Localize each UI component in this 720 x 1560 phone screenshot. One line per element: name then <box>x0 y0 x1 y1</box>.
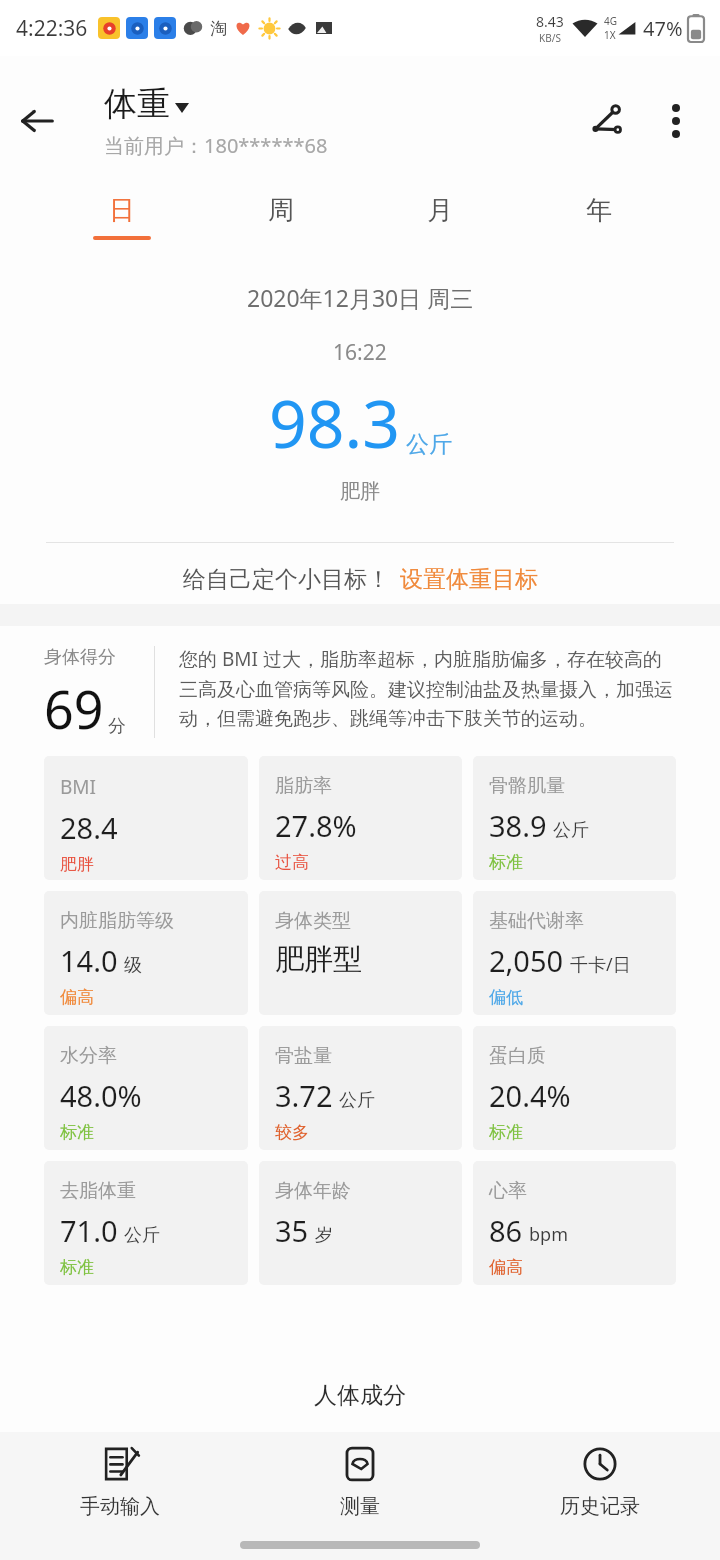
staticText: 手动输入 <box>80 1494 160 1519</box>
staticText: 48.0% <box>60 1076 142 1115</box>
button[interactable]: 测量 <box>240 1432 480 1530</box>
staticText: 身体年龄 <box>275 1179 351 1203</box>
staticText: 身体得分 <box>44 646 116 669</box>
button[interactable]: 手动输入 <box>0 1432 240 1530</box>
staticText: 年 <box>586 194 612 227</box>
staticText: 骨骼肌量 <box>489 774 565 798</box>
button[interactable]: 蛋白质 <box>473 1026 676 1150</box>
staticText: 8.43 <box>536 12 564 31</box>
button[interactable]: Back <box>0 84 74 158</box>
staticText: 69 <box>44 673 104 744</box>
button[interactable]: BMI <box>44 756 248 880</box>
staticText: 20.4% <box>489 1076 571 1115</box>
staticText: 周 <box>268 194 294 227</box>
staticText: 86 <box>489 1211 523 1250</box>
staticText: 测量 <box>340 1494 380 1519</box>
staticText: 偏低 <box>489 987 523 1008</box>
staticText: 38.9 <box>489 806 547 845</box>
staticText: 分 <box>108 715 126 738</box>
staticText: 98.3 <box>269 377 400 467</box>
staticText: 14.0 <box>60 941 118 980</box>
staticText: 体重 <box>104 83 170 125</box>
staticText: 给自己定个小目标！ <box>183 565 390 594</box>
staticText: 历史记录 <box>560 1494 640 1519</box>
button[interactable]: More options <box>644 89 708 153</box>
staticText: 2020年12月30日 周三 <box>247 282 474 313</box>
staticText: 标准 <box>60 1122 94 1143</box>
button[interactable]: 周 <box>201 186 360 248</box>
staticText: 35 <box>275 1211 309 1250</box>
button[interactable]: 骨盐量 <box>259 1026 462 1150</box>
button[interactable]: 心率 <box>473 1161 676 1285</box>
staticText: KB/S <box>539 31 561 45</box>
staticText: 级 <box>124 954 142 977</box>
button[interactable]: 去脂体重 <box>44 1161 248 1285</box>
staticText: 内脏脂肪等级 <box>60 909 174 933</box>
staticText: 月 <box>427 194 453 227</box>
staticText: 公斤 <box>553 819 589 842</box>
staticText: 岁 <box>315 1224 333 1247</box>
staticText: 1X <box>604 28 616 42</box>
button[interactable]: Share <box>570 84 644 158</box>
staticText: 公斤 <box>406 430 452 459</box>
button[interactable]: 骨骼肌量 <box>473 756 676 880</box>
staticText: 公斤 <box>124 1224 160 1247</box>
button[interactable]: 年 <box>519 186 678 248</box>
staticText: 心率 <box>489 1179 527 1203</box>
staticText: 4:22:36 <box>16 14 88 43</box>
staticText: 肥胖 <box>60 854 94 875</box>
staticText: 去脂体重 <box>60 1179 136 1203</box>
staticText: 设置体重目标 <box>400 565 538 594</box>
button[interactable]: 身体类型 <box>259 891 462 1015</box>
button[interactable]: 内脏脂肪等级 <box>44 891 248 1015</box>
staticText: 过高 <box>275 852 309 873</box>
staticText: 骨盐量 <box>275 1044 332 1068</box>
staticText: 4G <box>604 14 617 28</box>
staticText: 蛋白质 <box>489 1044 546 1068</box>
staticText: 脂肪率 <box>275 774 332 798</box>
staticText: bpm <box>529 1222 568 1247</box>
staticText: 2,050 <box>489 941 564 980</box>
staticText: 3.72 <box>275 1076 333 1115</box>
button[interactable]: 日 <box>42 186 201 248</box>
staticText: BMI <box>60 774 97 800</box>
button[interactable]: 水分率 <box>44 1026 248 1150</box>
staticText: 身体类型 <box>275 909 351 933</box>
staticText: 标准 <box>489 1122 523 1143</box>
staticText: 日 <box>109 194 135 227</box>
staticText: 71.0 <box>60 1211 118 1250</box>
staticText: 基础代谢率 <box>489 909 584 933</box>
staticText: 您的 BMI 过大，脂肪率超标，内脏脂肪偏多，存在较高的三高及心血管病等风险。建… <box>179 646 678 730</box>
staticText: 标准 <box>489 852 523 873</box>
button[interactable]: 脂肪率 <box>259 756 462 880</box>
staticText: 16:22 <box>333 338 387 367</box>
staticText: 淘 <box>210 18 227 39</box>
staticText: 公斤 <box>339 1089 375 1112</box>
button[interactable]: 身体年龄 <box>259 1161 462 1285</box>
staticText: 28.4 <box>60 808 118 847</box>
staticText: 水分率 <box>60 1044 117 1068</box>
button[interactable]: 基础代谢率 <box>473 891 676 1015</box>
staticText: 当前用户：180******68 <box>104 132 328 159</box>
staticText: 肥胖 <box>340 479 380 504</box>
button[interactable]: 给自己定个小目标！ <box>183 565 538 594</box>
staticText: 千卡/日 <box>570 952 631 977</box>
staticText: 肥胖型 <box>275 941 362 978</box>
button[interactable]: 月 <box>360 186 519 248</box>
staticText: 27.8% <box>275 806 357 845</box>
staticText: 偏高 <box>489 1257 523 1278</box>
staticText: 偏高 <box>60 987 94 1008</box>
button[interactable]: 体重 <box>104 83 189 125</box>
staticText: 标准 <box>60 1257 94 1278</box>
button[interactable]: 历史记录 <box>480 1432 720 1530</box>
staticText: 人体成分 <box>0 1381 720 1410</box>
staticText: 47% <box>643 15 683 42</box>
staticText: 较多 <box>275 1122 309 1143</box>
